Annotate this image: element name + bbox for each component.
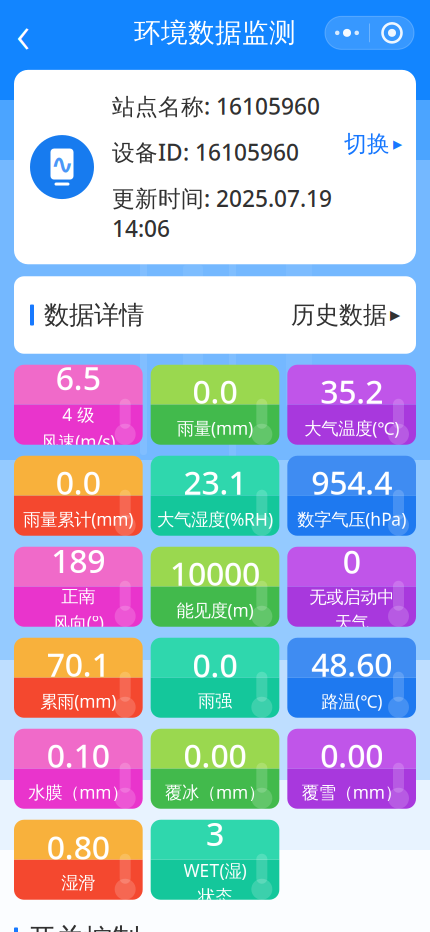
staticText: ∿: [50, 148, 73, 180]
button[interactable]: 10000: [151, 547, 279, 627]
staticText: 23.1: [183, 461, 246, 503]
staticText: 10000: [170, 552, 260, 594]
button[interactable]: 70.1: [14, 638, 143, 718]
staticText: 0.0: [192, 370, 237, 412]
staticText: 189: [51, 539, 105, 582]
staticText: 环境数据监测: [134, 16, 296, 49]
staticText: 0.10: [47, 734, 110, 776]
button[interactable]: Back: [0, 10, 46, 56]
staticText: 站点名称: 16105960: [112, 91, 320, 121]
button[interactable]: 3: [151, 820, 279, 900]
staticText: 48.60: [311, 643, 392, 685]
staticText: 数字气压(hPa): [297, 507, 406, 530]
staticText: WET(湿): [183, 859, 246, 882]
staticText: ‹: [16, 0, 30, 68]
button[interactable]: 35.2: [287, 365, 416, 445]
button[interactable]: 0.0: [14, 456, 143, 536]
staticText: 0.0: [192, 644, 237, 686]
staticText: 954.4: [311, 461, 392, 503]
staticText: 雨强: [198, 690, 232, 712]
staticText: 无或启动中: [309, 587, 394, 608]
button[interactable]: 48.60: [287, 638, 416, 718]
staticText: 开关控制: [28, 922, 140, 932]
button[interactable]: 23.1: [151, 456, 279, 536]
staticText: 正南: [61, 586, 95, 607]
staticText: 历史数据: [291, 300, 387, 330]
staticText: ▶: [390, 307, 400, 322]
staticText: 风速(m/s): [41, 430, 115, 453]
button[interactable]: 0.0: [151, 638, 279, 718]
button[interactable]: 0.00: [287, 729, 416, 809]
staticText: 雨量(mm): [177, 416, 253, 439]
staticText: 设备ID: 16105960: [112, 137, 299, 167]
button[interactable]: 0: [287, 547, 416, 627]
staticText: 0.00: [183, 734, 246, 776]
staticText: 覆冰（mm）: [165, 780, 265, 803]
button[interactable]: 0.80: [14, 820, 143, 900]
staticText: 70.1: [47, 643, 110, 685]
staticText: 水膜（mm）: [28, 780, 128, 803]
staticText: 切换: [344, 130, 390, 158]
staticText: ▶: [393, 137, 402, 151]
staticText: 0: [343, 540, 361, 583]
button[interactable]: 切换: [338, 124, 416, 164]
staticText: 覆雪（mm）: [302, 780, 402, 803]
staticText: 大气温度(℃): [304, 416, 399, 439]
staticText: 4 级: [62, 403, 94, 426]
button[interactable]: 954.4: [287, 456, 416, 536]
staticText: 3: [206, 812, 224, 855]
button[interactable]: 历史数据: [291, 294, 400, 336]
staticText: 能见度(m): [176, 598, 253, 621]
staticText: 数据详情: [44, 299, 144, 330]
staticText: 天气: [335, 612, 369, 633]
staticText: 更新时间: 2025.07.19 14:06: [112, 183, 332, 243]
button[interactable]: More: [325, 16, 414, 49]
staticText: 大气湿度(%RH): [157, 507, 273, 530]
button[interactable]: 0.0: [151, 365, 279, 445]
staticText: 路温(℃): [321, 689, 382, 712]
staticText: 0.80: [47, 826, 110, 868]
staticText: 累雨(mm): [40, 689, 116, 712]
staticText: 0.0: [56, 461, 101, 503]
staticText: 6.5: [56, 356, 101, 399]
staticText: 雨量累计(mm): [23, 507, 133, 530]
staticText: 状态: [198, 886, 232, 907]
staticText: 风向(°): [53, 611, 104, 634]
button[interactable]: 0.10: [14, 729, 143, 809]
button[interactable]: 0.00: [151, 729, 279, 809]
button[interactable]: 6.5: [14, 365, 143, 445]
button[interactable]: 189: [14, 547, 143, 627]
staticText: 湿滑: [61, 872, 95, 894]
staticText: 35.2: [320, 370, 383, 412]
staticText: 0.00: [320, 734, 383, 776]
